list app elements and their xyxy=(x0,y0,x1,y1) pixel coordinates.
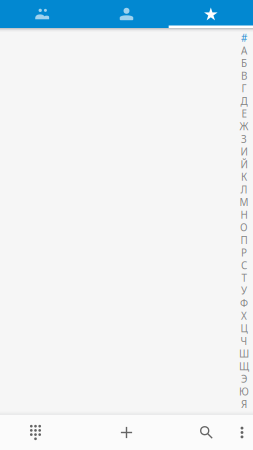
staticText: Щ xyxy=(239,360,249,373)
staticText: О xyxy=(240,221,248,234)
button[interactable]: Groups xyxy=(0,0,84,28)
staticText: П xyxy=(240,233,247,247)
staticText: Ч xyxy=(240,334,247,348)
staticText: З xyxy=(241,132,247,146)
staticText: Ф xyxy=(240,296,248,310)
staticText: Д xyxy=(240,94,247,108)
staticText: # xyxy=(241,31,247,45)
staticText: Ж xyxy=(239,120,248,133)
button[interactable]: Favourites xyxy=(169,0,253,28)
button[interactable]: Dialpad xyxy=(0,415,71,450)
staticText: Н xyxy=(240,208,247,221)
staticText: Г xyxy=(241,82,246,95)
button[interactable]: Add contact xyxy=(71,415,182,450)
staticText: Я xyxy=(241,398,247,411)
staticText: Ш xyxy=(239,347,249,360)
button[interactable]: Search xyxy=(182,415,231,450)
staticText: Л xyxy=(240,183,247,196)
staticText: К xyxy=(241,170,247,184)
button[interactable]: More options xyxy=(231,415,253,450)
staticText: Й xyxy=(240,158,247,171)
staticText: А xyxy=(241,44,247,57)
staticText: Т xyxy=(241,271,246,285)
button[interactable]: All contacts xyxy=(84,0,169,28)
staticText: Б xyxy=(241,57,247,70)
staticText: С xyxy=(241,259,247,272)
staticText: М xyxy=(239,195,248,209)
staticText: Ю xyxy=(239,385,249,398)
staticText: Х xyxy=(241,309,247,323)
staticText: И xyxy=(240,145,247,158)
staticText: Ц xyxy=(240,322,247,335)
staticText: В xyxy=(241,69,247,83)
staticText: У xyxy=(241,284,247,297)
staticText: Р xyxy=(241,246,247,259)
staticText: Э xyxy=(241,372,247,386)
staticText: Е xyxy=(241,107,246,120)
